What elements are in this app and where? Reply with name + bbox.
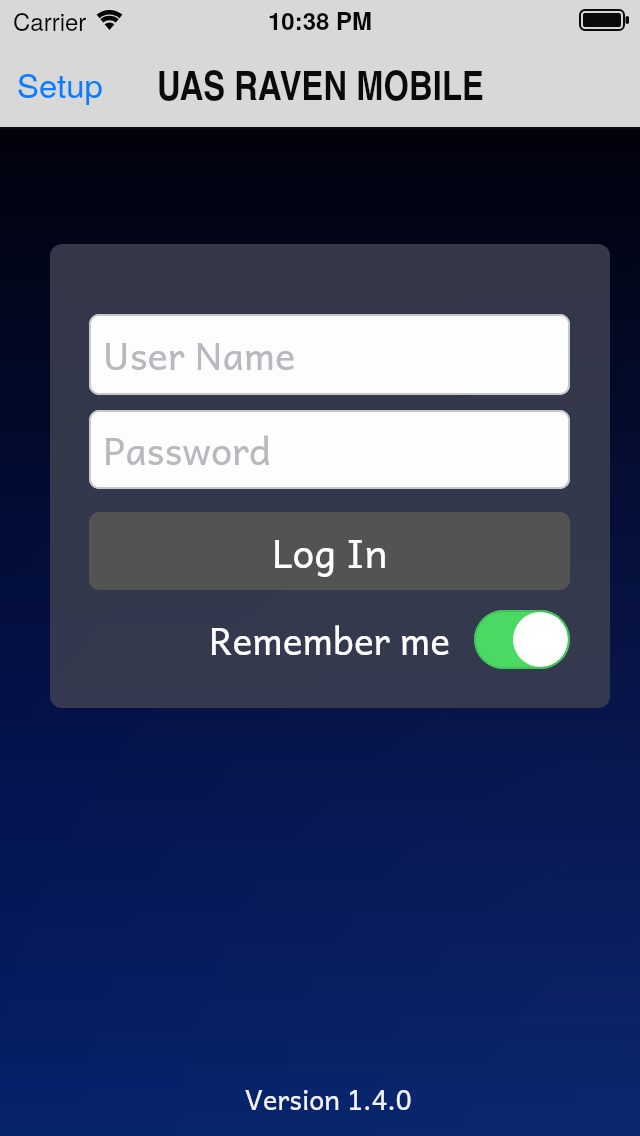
staticText: Version 1.4.0	[245, 1077, 412, 1121]
button[interactable]: User Name	[89, 314, 570, 395]
staticText: User Name	[103, 324, 296, 385]
staticText: Setup	[17, 60, 103, 107]
button[interactable]	[474, 610, 570, 669]
staticText: Password	[103, 419, 271, 480]
button[interactable]: Setup	[17, 60, 103, 107]
button[interactable]: Password	[89, 410, 570, 489]
staticText: Carrier	[13, 3, 87, 37]
staticText: Remember me	[209, 610, 450, 669]
button[interactable]: Log In	[89, 512, 570, 590]
staticText: 10:38 PM	[268, 3, 373, 37]
staticText: Log In	[272, 520, 388, 583]
staticText: UAS RAVEN MOBILE	[157, 56, 484, 112]
